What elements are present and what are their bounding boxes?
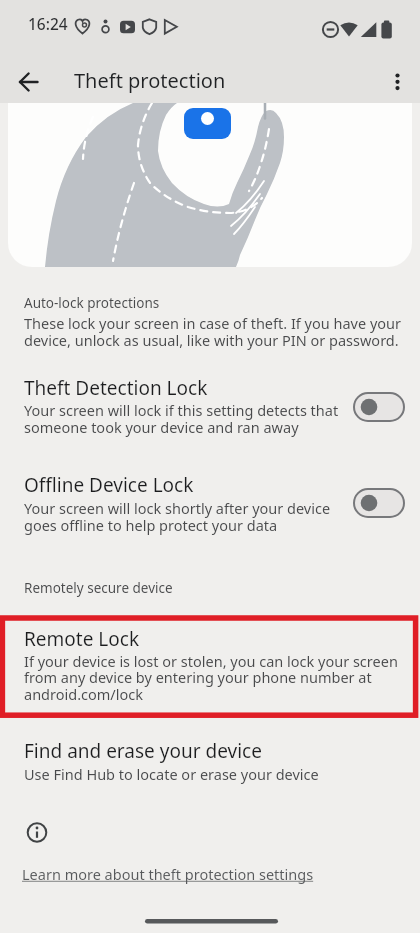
staticText: These lock your screen in case of theft.… <box>24 313 401 350</box>
button[interactable]: Find and erase your device <box>0 736 420 792</box>
staticText: Offline Device Lock <box>24 472 194 498</box>
button[interactable] <box>376 60 418 104</box>
button[interactable]: Offline Device Lock <box>0 466 420 542</box>
button[interactable] <box>349 386 409 428</box>
staticText: Theft Detection Lock <box>24 375 208 401</box>
button[interactable]: Learn more about theft protection settin… <box>18 858 398 888</box>
staticText: If your device is lost or stolen, you ca… <box>24 651 398 705</box>
staticText: Auto-lock protections <box>24 294 160 312</box>
button[interactable]: Remote Lock <box>0 622 420 714</box>
staticText: Your screen will lock if this setting de… <box>24 400 339 437</box>
staticText: 16:24 <box>28 13 68 34</box>
staticText: Your screen will lock shortly after your… <box>24 498 331 535</box>
button[interactable] <box>6 60 50 104</box>
staticText: Remote Lock <box>24 626 140 652</box>
button[interactable] <box>349 482 409 524</box>
staticText: Remotely secure device <box>24 579 173 597</box>
button[interactable]: Theft Detection Lock <box>0 368 420 444</box>
staticText: Use Find Hub to locate or erase your dev… <box>24 764 319 784</box>
staticText: Theft protection <box>74 67 226 94</box>
staticText: Learn more about theft protection settin… <box>22 864 314 884</box>
button[interactable] <box>8 103 412 267</box>
staticText: Find and erase your device <box>24 738 262 764</box>
